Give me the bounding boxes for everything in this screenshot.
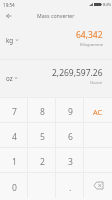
button[interactable]: 4 xyxy=(0,123,28,147)
button[interactable]: Back xyxy=(2,9,15,22)
staticText: 8 xyxy=(40,106,45,118)
staticText: AC xyxy=(93,107,103,117)
button[interactable]: oz xyxy=(0,60,112,97)
other: Backspace xyxy=(94,182,103,189)
button[interactable]: 0 xyxy=(0,173,28,198)
staticText: 6 xyxy=(68,131,73,143)
button[interactable]: kg xyxy=(0,22,112,59)
staticText: 7 xyxy=(12,106,17,118)
button[interactable]: 9 xyxy=(56,98,84,122)
staticText: Kilogramme xyxy=(80,42,103,47)
staticText: 2 xyxy=(40,156,45,168)
staticText: 3 xyxy=(68,156,73,168)
staticText: . xyxy=(69,182,72,194)
button[interactable]: Backspace xyxy=(84,173,112,198)
button[interactable]: 5 xyxy=(28,123,56,147)
button[interactable]: 8 xyxy=(28,98,56,122)
staticText: 4 xyxy=(12,131,17,143)
staticText: 0 xyxy=(12,182,17,194)
button[interactable]: 7 xyxy=(0,98,28,122)
button[interactable]: 2 xyxy=(28,148,56,172)
staticText: 64,342 xyxy=(76,29,103,41)
staticText: 5 xyxy=(40,131,45,143)
button[interactable]: 6 xyxy=(56,123,84,147)
button[interactable]: 1 xyxy=(0,148,28,172)
staticText: kg xyxy=(6,36,14,44)
staticText: Ounce xyxy=(90,80,103,85)
button[interactable]: 3 xyxy=(56,148,84,172)
button[interactable]: . xyxy=(56,173,84,198)
staticText: 9 xyxy=(68,106,73,118)
button[interactable]: AC xyxy=(84,98,112,122)
staticText: 84% xyxy=(103,2,112,8)
staticText: 1 xyxy=(12,156,17,168)
staticText: 19:54 xyxy=(3,2,15,8)
staticText: 2,269,597.26 xyxy=(52,67,103,79)
staticText: Mass converter xyxy=(37,12,75,19)
staticText: oz xyxy=(6,74,13,82)
